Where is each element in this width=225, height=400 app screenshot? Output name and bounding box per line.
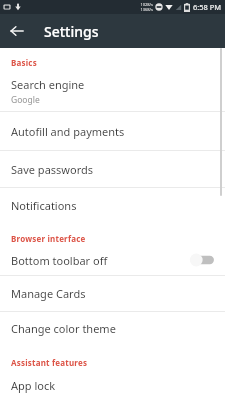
staticText: 1028/s	[140, 2, 153, 7]
staticText: Save passwords	[11, 162, 93, 177]
button[interactable]: Change color theme	[0, 312, 225, 345]
button[interactable]: Back	[0, 14, 34, 48]
button[interactable]: App lock	[0, 370, 225, 400]
staticText: Autofill and payments	[11, 124, 125, 139]
staticText: Change color theme	[11, 321, 116, 336]
button[interactable]: Save passwords	[0, 151, 225, 187]
staticText: Search engine	[11, 77, 85, 92]
button[interactable]: Notifications	[0, 188, 225, 222]
staticText: Assistant features	[11, 357, 88, 368]
staticText: 6:58 PM	[193, 2, 222, 12]
staticText: Settings	[44, 22, 99, 41]
staticText: 1368/s	[140, 7, 153, 12]
staticText: Browser interface	[11, 233, 86, 244]
staticText: Bottom toolbar off	[11, 253, 108, 268]
button[interactable]: Manage Cards	[0, 276, 225, 311]
staticText: Manage Cards	[11, 286, 86, 301]
staticText: Basics	[11, 57, 37, 68]
button[interactable]: Autofill and payments	[0, 112, 225, 150]
staticText: Notifications	[11, 198, 77, 213]
staticText: Google	[11, 94, 40, 106]
staticText: App lock	[11, 378, 56, 393]
button[interactable]: Bottom toolbar off	[0, 245, 225, 275]
button[interactable]: Search engine	[0, 71, 225, 111]
button[interactable]: Bottom toolbar toggle	[190, 252, 216, 268]
